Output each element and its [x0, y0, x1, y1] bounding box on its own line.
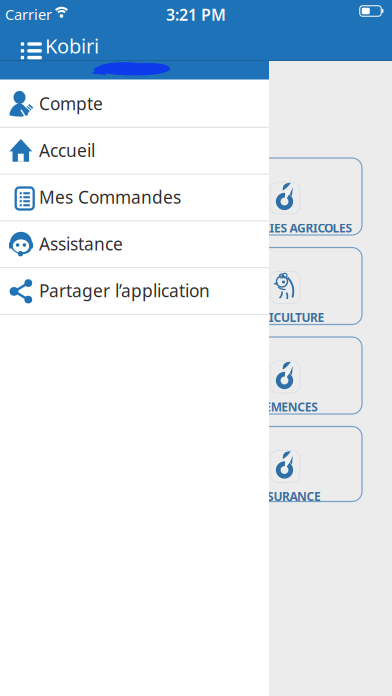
staticText: Mes Commandes: [39, 185, 181, 208]
button[interactable]: Partager l’application: [0, 267, 269, 314]
button[interactable]: Compte: [0, 80, 269, 127]
staticText: ASSURANCE: [253, 488, 321, 504]
button[interactable]: Accueil: [0, 127, 269, 174]
staticText: Compte: [39, 92, 103, 115]
staticText: Kobiri: [45, 32, 99, 59]
staticText: AGRICULTURE: [245, 309, 324, 325]
button[interactable]: SEMENCES: [208, 337, 362, 414]
button[interactable]: MACHINERIES AGRICOLES: [208, 158, 362, 235]
staticText: MACHINERIES AGRICOLES: [207, 220, 352, 236]
staticText: Carrier: [5, 4, 52, 24]
staticText: SEMENCES: [258, 399, 318, 415]
staticText: Accueil: [39, 139, 95, 162]
button[interactable]: Menu: [17, 34, 39, 52]
staticText: Assistance: [39, 232, 123, 255]
button[interactable]: ASSURANCE: [208, 426, 362, 501]
staticText: 3:21 PM: [166, 4, 226, 25]
button[interactable]: AGRICULTURE: [208, 247, 362, 324]
button[interactable]: Mes Commandes: [0, 174, 269, 220]
staticText: Partager l’application: [39, 279, 210, 302]
button[interactable]: Assistance: [0, 220, 269, 267]
